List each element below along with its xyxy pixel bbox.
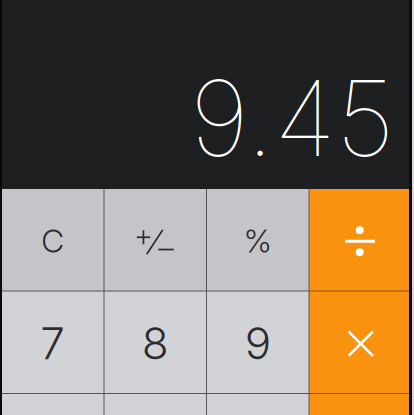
- button[interactable]: Minus: [309, 394, 411, 415]
- button[interactable]: 4: [2, 394, 103, 415]
- button[interactable]: %: [207, 189, 308, 290]
- staticText: 7: [40, 317, 65, 370]
- button[interactable]: 5: [104, 394, 206, 415]
- button[interactable]: 9: [207, 291, 308, 393]
- button[interactable]: Multiply: [309, 291, 411, 393]
- button[interactable]: C: [2, 189, 103, 290]
- button[interactable]: 8: [104, 291, 206, 393]
- button[interactable]: Divide: [309, 189, 411, 290]
- button[interactable]: Plus minus: [104, 189, 206, 290]
- staticText: C: [41, 221, 64, 260]
- staticText: 9: [245, 317, 271, 370]
- staticText: 8: [142, 317, 169, 370]
- staticText: %: [244, 221, 272, 260]
- staticText: 9.45: [190, 55, 395, 181]
- button[interactable]: 7: [2, 291, 103, 393]
